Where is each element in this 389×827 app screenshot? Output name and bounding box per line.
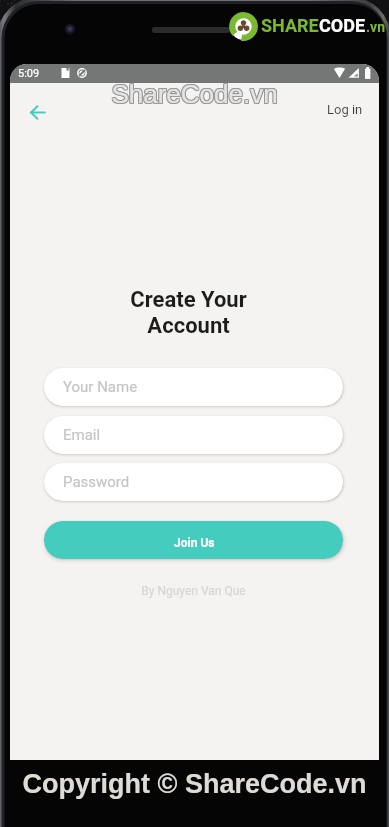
staticText: .vn [366, 19, 385, 35]
staticText: Join Us [174, 536, 215, 550]
staticText: Copyright © ShareCode.vn [0, 769, 389, 799]
staticText: Log in [327, 102, 363, 117]
staticText: SHARE [261, 15, 319, 36]
staticText: ShareCode.vn [1, 78, 389, 107]
staticText: Create Your Account [10, 287, 373, 338]
staticText: ShareCode.vn [0, 78, 388, 107]
staticText: Your Name [63, 378, 138, 396]
staticText: ShareCode.vn [0, 78, 389, 107]
button[interactable]: Email [44, 416, 343, 454]
button[interactable]: Your Name [44, 368, 343, 406]
button[interactable]: Password [44, 463, 343, 501]
staticText: ShareCode.vn [0, 79, 389, 108]
staticText: ShareCode.vn [1, 80, 389, 109]
staticText: ShareCode.vn [0, 80, 388, 109]
button[interactable]: Back [18, 93, 56, 131]
button[interactable]: Join Us [44, 521, 343, 559]
staticText: Password [63, 473, 130, 491]
staticText: Email [63, 426, 101, 444]
staticText: By Nguyen Van Que [44, 584, 343, 598]
staticText: CODE [319, 15, 366, 36]
staticText: ShareCode.vn [1, 79, 389, 108]
staticText: 5:09 [18, 67, 40, 80]
staticText: ShareCode.vn [0, 79, 388, 108]
button[interactable]: Log in [317, 93, 372, 125]
staticText: ShareCode.vn [0, 80, 389, 109]
